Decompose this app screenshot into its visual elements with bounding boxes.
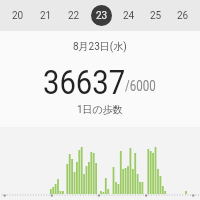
- button[interactable]: 24: [115, 0, 142, 31]
- staticText: 1日の歩数: [77, 103, 123, 116]
- staticText: 24: [123, 10, 135, 22]
- button[interactable]: 22: [60, 0, 88, 31]
- staticText: 22: [68, 10, 80, 22]
- staticText: 25: [150, 10, 162, 22]
- staticText: /6000: [125, 77, 156, 95]
- staticText: 20: [12, 10, 24, 22]
- staticText: 26: [177, 10, 189, 22]
- staticText: 21: [40, 10, 52, 22]
- staticText: 23: [96, 10, 108, 22]
- button[interactable]: 23: [88, 0, 115, 31]
- button[interactable]: 21: [32, 0, 60, 31]
- button[interactable]: 25: [142, 0, 169, 31]
- button[interactable]: 20: [4, 0, 32, 31]
- button[interactable]: 26: [169, 0, 196, 31]
- staticText: 8月23日(水): [73, 40, 127, 53]
- staticText: 36637: [43, 62, 126, 102]
